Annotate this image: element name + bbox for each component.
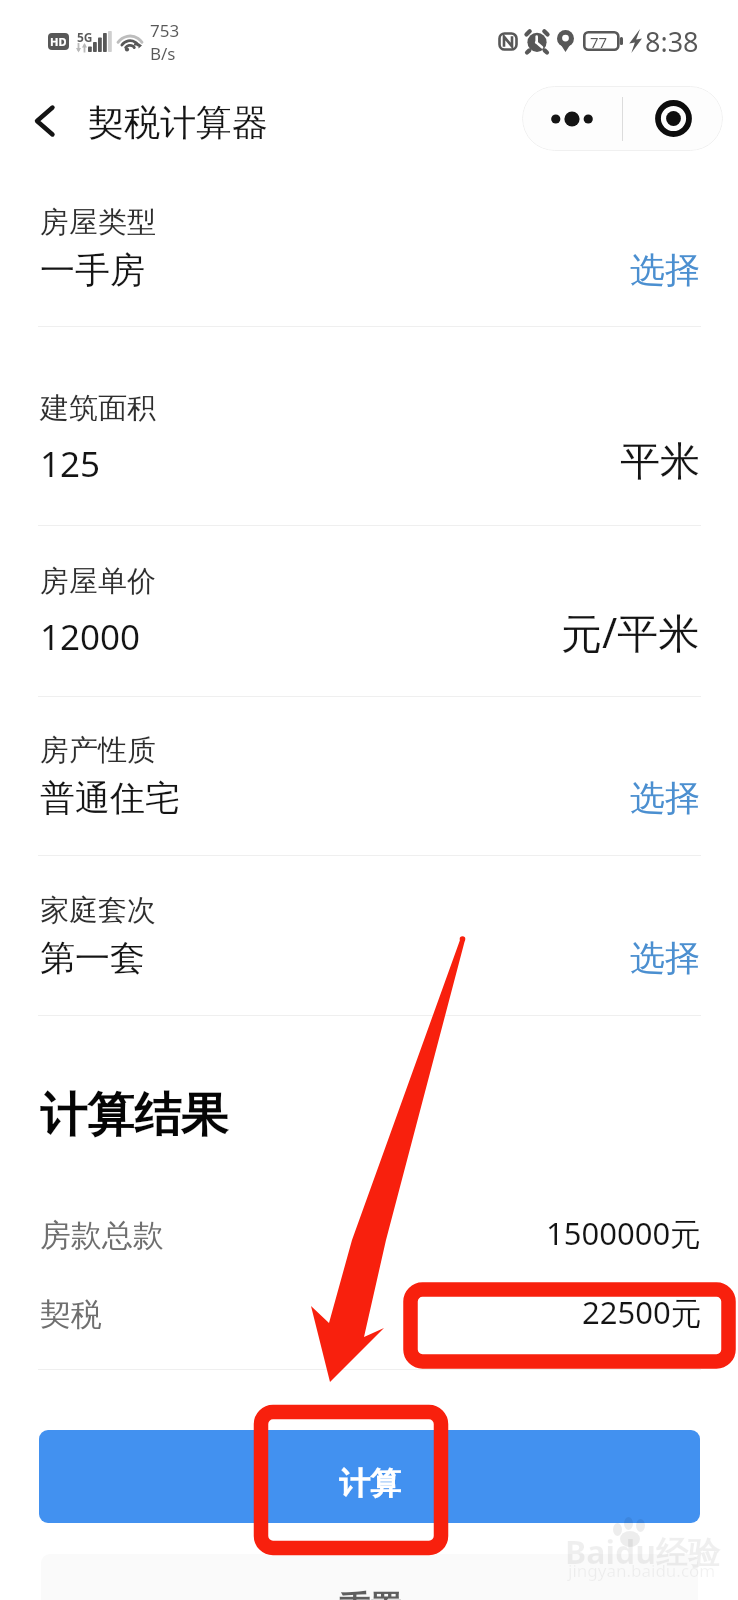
staticText: 房屋类型 (40, 204, 156, 241)
staticText: 家庭套次 (40, 892, 156, 929)
staticText: 一手房 (40, 248, 145, 292)
staticText: 选择 (630, 776, 700, 820)
staticText: 普通住宅 (40, 776, 180, 820)
staticText: jingyan.baidu.com (568, 1559, 716, 1582)
button[interactable]: 房屋类型 (0, 188, 738, 326)
staticText: 契税 (40, 1295, 102, 1334)
staticText: 重置 (339, 1588, 401, 1600)
staticText: 建筑面积 (40, 390, 156, 427)
staticText: 5G (77, 29, 93, 45)
staticText: 房屋单价 (40, 563, 156, 600)
button[interactable]: 家庭套次 (0, 876, 738, 1015)
staticText: 契税计算器 (88, 100, 268, 145)
staticText: 房款总款 (40, 1216, 164, 1255)
button[interactable]: Back (18, 95, 70, 147)
staticText: 选择 (630, 248, 700, 292)
staticText: 元/平米 (561, 604, 700, 660)
staticText: 第一套 (40, 936, 145, 980)
staticText: 12000 (40, 613, 141, 661)
staticText: 计算结果 (40, 1086, 228, 1145)
staticText: 125 (40, 440, 101, 488)
button[interactable]: Close mini program (623, 86, 723, 151)
button[interactable]: 重置 (41, 1554, 698, 1600)
staticText: 753 (150, 19, 180, 42)
staticText: HD (50, 34, 67, 49)
button[interactable]: 房屋单价 (0, 547, 738, 696)
staticText: 1500000元 (546, 1212, 702, 1254)
staticText: 平米 (620, 436, 700, 486)
staticText: 8:38 (645, 23, 699, 60)
button[interactable]: 房产性质 (0, 716, 738, 855)
staticText: 22500元 (582, 1291, 702, 1333)
staticText: 77 (590, 32, 608, 52)
button[interactable]: 建筑面积 (0, 374, 738, 525)
staticText: 选择 (630, 936, 700, 980)
staticText: 计算 (339, 1464, 401, 1503)
staticText: B/s (150, 42, 176, 65)
button[interactable]: More options (522, 86, 622, 151)
button[interactable]: 计算 (39, 1430, 700, 1523)
staticText: Baidu经验 (565, 1530, 721, 1574)
staticText: 房产性质 (40, 732, 156, 769)
